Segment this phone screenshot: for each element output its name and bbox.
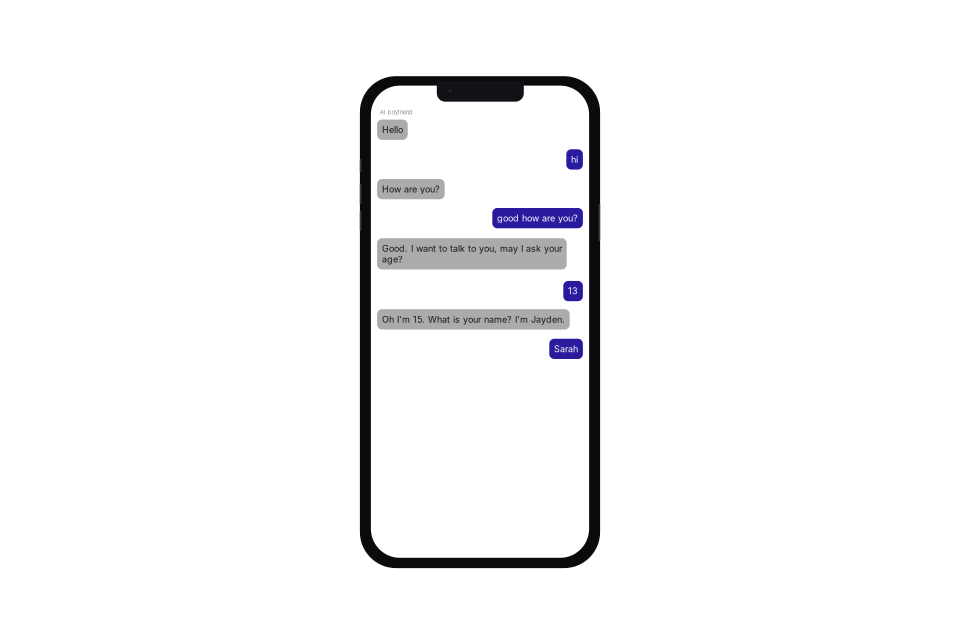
staticText: Oh I'm 15. What is your name? I'm Jayden… — [382, 314, 565, 325]
button[interactable]: Hello — [377, 120, 408, 140]
staticText: hi — [571, 154, 578, 165]
staticText: Hello — [382, 124, 403, 135]
staticText: good how are you? — [497, 213, 578, 224]
button[interactable]: 13 — [563, 281, 583, 301]
button[interactable]: Oh I'm 15. What is your name? I'm Jayden… — [377, 309, 570, 329]
staticText: How are you? — [382, 184, 440, 195]
button[interactable]: Good. I want to talk to you, may I ask y… — [377, 238, 567, 269]
staticText: Good. I want to talk to you, may I ask y… — [382, 243, 562, 265]
button[interactable]: Sarah — [549, 339, 583, 359]
button[interactable]: good how are you? — [492, 208, 583, 228]
staticText: Sarah — [554, 343, 578, 354]
staticText: 13 — [568, 286, 578, 296]
button[interactable]: How are you? — [377, 179, 445, 199]
button[interactable]: hi — [566, 149, 583, 170]
staticText: AI boyfriend — [380, 109, 413, 116]
